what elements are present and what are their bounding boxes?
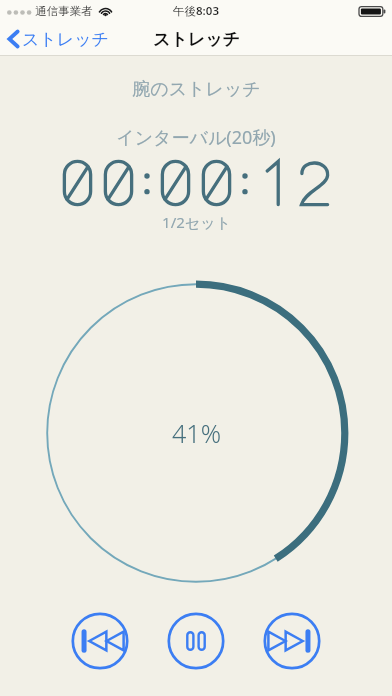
staticText: 腕のストレッチ — [132, 78, 261, 101]
staticText: 1/2セット — [162, 212, 231, 232]
staticText: 通信事業者 — [35, 4, 93, 18]
staticText: 41% — [172, 416, 221, 450]
staticText: インターバル(20秒) — [116, 125, 276, 150]
staticText: 午後8:03 — [173, 3, 219, 19]
button[interactable]: ストレッチ — [0, 25, 121, 53]
staticText: ストレッチ — [153, 29, 240, 50]
staticText: ストレッチ — [22, 29, 109, 50]
button[interactable]: Previous — [71, 612, 129, 670]
button[interactable]: Pause — [167, 612, 225, 670]
button[interactable]: Next — [263, 612, 321, 670]
